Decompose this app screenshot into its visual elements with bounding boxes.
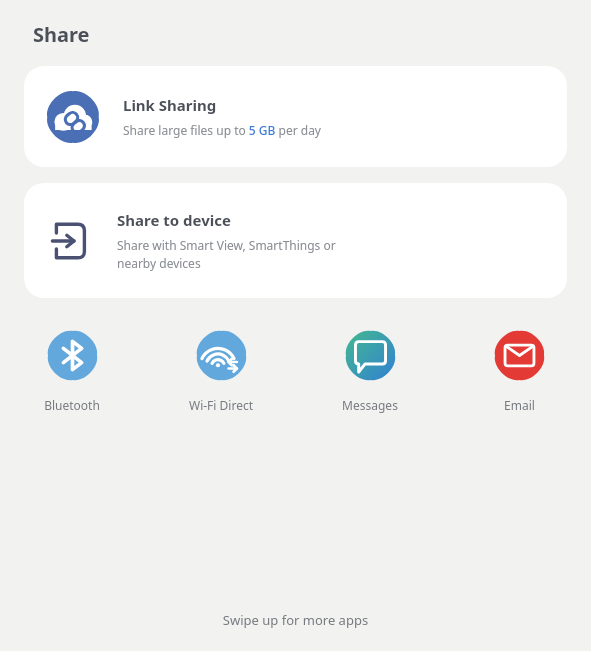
staticText: Swipe up for more apps: [0, 611, 591, 629]
button[interactable]: Bluetooth: [22, 324, 122, 415]
button[interactable]: Share to device: [24, 183, 567, 298]
other: Bluetooth: [43, 326, 102, 385]
other: Share to device: [50, 221, 90, 261]
staticText: Email: [504, 397, 535, 413]
button[interactable]: Link Sharing: [24, 66, 567, 167]
other: Email: [490, 326, 549, 385]
staticText: Bluetooth: [44, 397, 100, 413]
staticText: Messages: [342, 397, 398, 413]
staticText: Share large files up to 5 GB per day: [123, 122, 321, 138]
button[interactable]: Email: [469, 324, 569, 415]
other: Wi-Fi Direct: [192, 326, 251, 385]
button[interactable]: Messages: [320, 324, 420, 415]
staticText: Wi-Fi Direct: [189, 397, 253, 413]
staticText: Share: [33, 21, 90, 48]
other: Link Sharing: [42, 86, 104, 148]
staticText: Share to device: [117, 210, 231, 230]
staticText: Share with Smart View, SmartThings or ne…: [117, 237, 336, 272]
other: Messages: [341, 326, 400, 385]
button[interactable]: Wi-Fi Direct: [171, 324, 271, 415]
staticText: Link Sharing: [123, 95, 217, 115]
